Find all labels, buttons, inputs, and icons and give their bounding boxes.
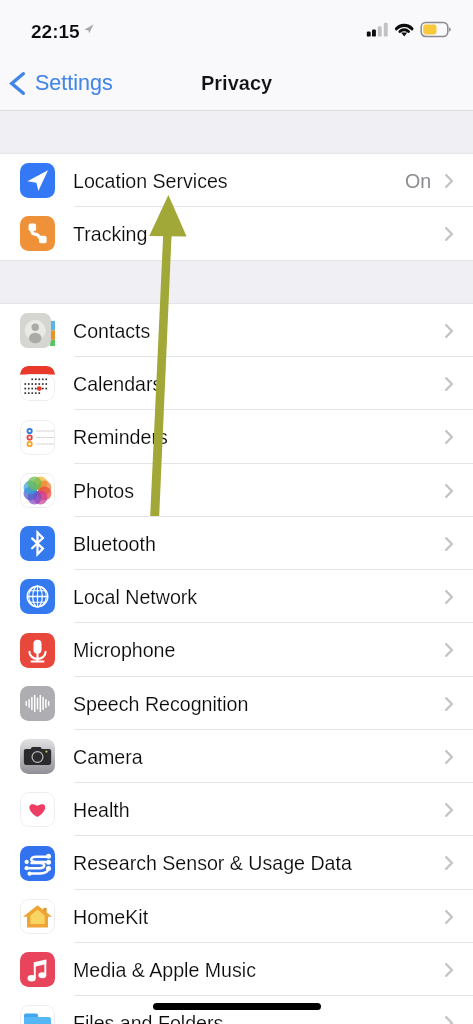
staticText: Contacts (73, 320, 151, 342)
button[interactable]: HomeKit (0, 890, 473, 943)
staticText: On (405, 170, 432, 192)
button[interactable]: Media & Apple Music (0, 943, 473, 996)
button[interactable]: Camera (0, 730, 473, 783)
staticText: Tracking (73, 223, 148, 245)
staticText: 22:15 (31, 21, 80, 42)
staticText: Photos (73, 480, 135, 502)
staticText: Calendars (73, 373, 163, 395)
button[interactable]: Files and Folders (0, 996, 473, 1024)
staticText: Local Network (73, 586, 198, 608)
button[interactable]: Calendars (0, 357, 473, 410)
staticText: Location Services (73, 170, 228, 192)
button[interactable]: Tracking (0, 207, 473, 260)
button[interactable]: Photos (0, 464, 473, 517)
staticText: Privacy (201, 72, 273, 94)
staticText: Health (73, 799, 130, 821)
button[interactable]: Location Services (0, 154, 473, 207)
button[interactable]: Microphone (0, 623, 473, 677)
button[interactable]: Speech Recognition (0, 677, 473, 730)
button[interactable]: Local Network (0, 570, 473, 623)
staticText: HomeKit (73, 906, 149, 928)
staticText: Files and Folders (73, 1012, 224, 1024)
button[interactable]: Research Sensor & Usage Data (0, 836, 473, 890)
button[interactable]: Settings (10, 71, 113, 95)
button[interactable]: Contacts (0, 304, 473, 357)
button[interactable]: Bluetooth (0, 517, 473, 570)
staticText: Settings (35, 71, 113, 95)
staticText: Microphone (73, 639, 176, 661)
staticText: Reminders (73, 426, 168, 448)
staticText: Media & Apple Music (73, 959, 256, 981)
button[interactable]: Reminders (0, 410, 473, 464)
staticText: Bluetooth (73, 533, 156, 555)
staticText: Camera (73, 746, 143, 768)
staticText: Research Sensor & Usage Data (73, 852, 352, 874)
button[interactable]: Health (0, 783, 473, 836)
staticText: Speech Recognition (73, 693, 249, 715)
